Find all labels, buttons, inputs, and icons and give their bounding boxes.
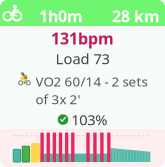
staticText: VO2 60/14 - 2 sets of 3x 2' — [35, 72, 147, 108]
staticText: 28 km — [112, 5, 160, 27]
staticText: 131bpm — [51, 28, 114, 49]
staticText: 🚴 — [16, 72, 31, 86]
staticText: 103% — [71, 110, 107, 129]
staticText: 1h0m — [39, 5, 83, 27]
staticText: Load 73 — [55, 49, 109, 68]
